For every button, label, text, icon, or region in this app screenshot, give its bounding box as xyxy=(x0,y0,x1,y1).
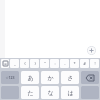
staticText: " xyxy=(44,61,46,66)
staticText: さ xyxy=(67,74,74,82)
button[interactable]: _ xyxy=(10,59,19,68)
staticText: ) xyxy=(34,61,36,66)
button[interactable]: あ xyxy=(21,71,39,84)
button[interactable]: ) xyxy=(30,59,39,68)
staticText: # xyxy=(83,61,86,66)
button[interactable]: Add xyxy=(87,46,96,55)
staticText: : xyxy=(54,61,56,66)
button[interactable]: な xyxy=(41,86,59,99)
staticText: ! xyxy=(94,61,96,66)
staticText: * xyxy=(73,61,76,66)
button[interactable]: か xyxy=(41,71,59,84)
button[interactable]: Backspace xyxy=(81,71,99,84)
button[interactable]: は xyxy=(61,86,79,99)
staticText: た xyxy=(27,89,34,97)
button[interactable]: た xyxy=(21,86,39,99)
button[interactable]: # xyxy=(80,59,89,68)
button[interactable]: Symbols and numbers xyxy=(1,71,19,84)
button[interactable]: さ xyxy=(61,71,79,84)
button[interactable]: " xyxy=(40,59,49,68)
staticText: - xyxy=(64,61,66,66)
staticText: _ xyxy=(14,61,16,66)
button[interactable]: - xyxy=(60,59,69,68)
button[interactable]: Keyboard xyxy=(1,59,9,68)
staticText: か xyxy=(47,74,54,82)
staticText: あ xyxy=(27,74,34,82)
button[interactable]: ! xyxy=(90,59,99,68)
staticText: は xyxy=(67,89,74,97)
staticText: ☆123 xyxy=(5,75,15,80)
button[interactable]: * xyxy=(70,59,79,68)
button[interactable]: ( xyxy=(20,59,29,68)
staticText: な xyxy=(47,89,54,97)
staticText: ( xyxy=(24,61,26,66)
button[interactable]: : xyxy=(50,59,59,68)
